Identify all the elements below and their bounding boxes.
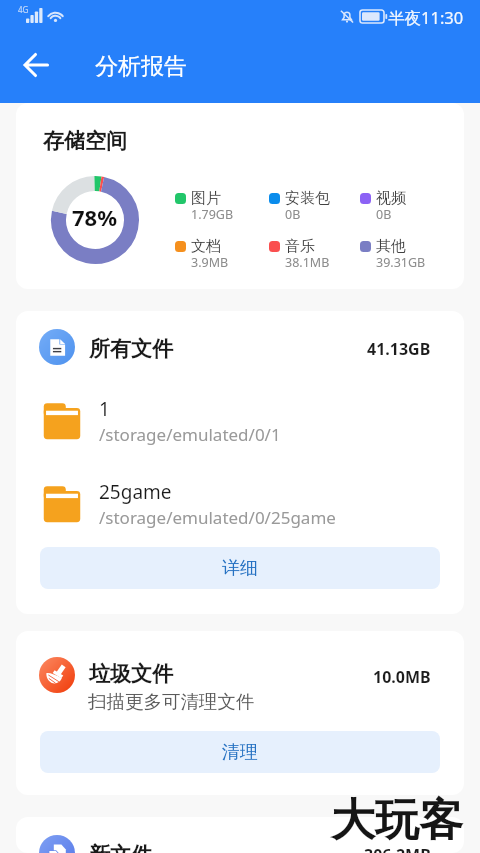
button[interactable]: Back [12,41,59,88]
staticText: 1 [99,396,110,422]
staticText: 39.31GB [376,254,426,271]
button[interactable]: 25game [16,479,464,529]
staticText: 半夜11:30 [388,6,464,29]
staticText: 38.1MB [285,254,330,271]
staticText: 4G [18,4,29,15]
staticText: 所有文件 [89,336,173,362]
staticText: 0B [376,206,392,223]
staticText: 10.0MB [373,666,431,688]
staticText: 清理 [222,741,258,764]
staticText: 垃圾文件 [89,661,173,687]
staticText: 306.2MB [364,844,431,853]
button[interactable]: 所有文件 [16,311,464,347]
staticText: 25game [99,479,172,505]
staticText: 0B [285,206,301,223]
staticText: 扫描更多可清理文件 [88,690,255,713]
staticText: 新文件 [89,842,152,853]
button[interactable]: 新文件 [16,817,464,853]
staticText: 41.13GB [367,338,431,360]
staticText: /storage/emulated/0/1 [99,423,281,446]
staticText: 图片 [191,189,221,208]
staticText: 存储空间 [43,128,127,154]
button[interactable]: 垃圾文件 [16,631,464,667]
staticText: 其他 [376,237,406,256]
staticText: 大玩客 [331,793,463,848]
button[interactable]: 1 [16,396,464,446]
staticText: 安装包 [285,189,330,208]
staticText: 音乐 [285,237,315,256]
staticText: /storage/emulated/0/25game [99,506,336,529]
staticText: 1.79GB [191,206,234,223]
staticText: 分析报告 [95,52,187,81]
staticText: 视频 [376,189,406,208]
button[interactable]: 详细 [40,547,440,589]
staticText: 3.9MB [191,254,229,271]
staticText: 详细 [222,557,258,580]
button[interactable]: 清理 [40,731,440,773]
staticText: 文档 [191,237,221,256]
staticText: 78% [72,202,118,232]
